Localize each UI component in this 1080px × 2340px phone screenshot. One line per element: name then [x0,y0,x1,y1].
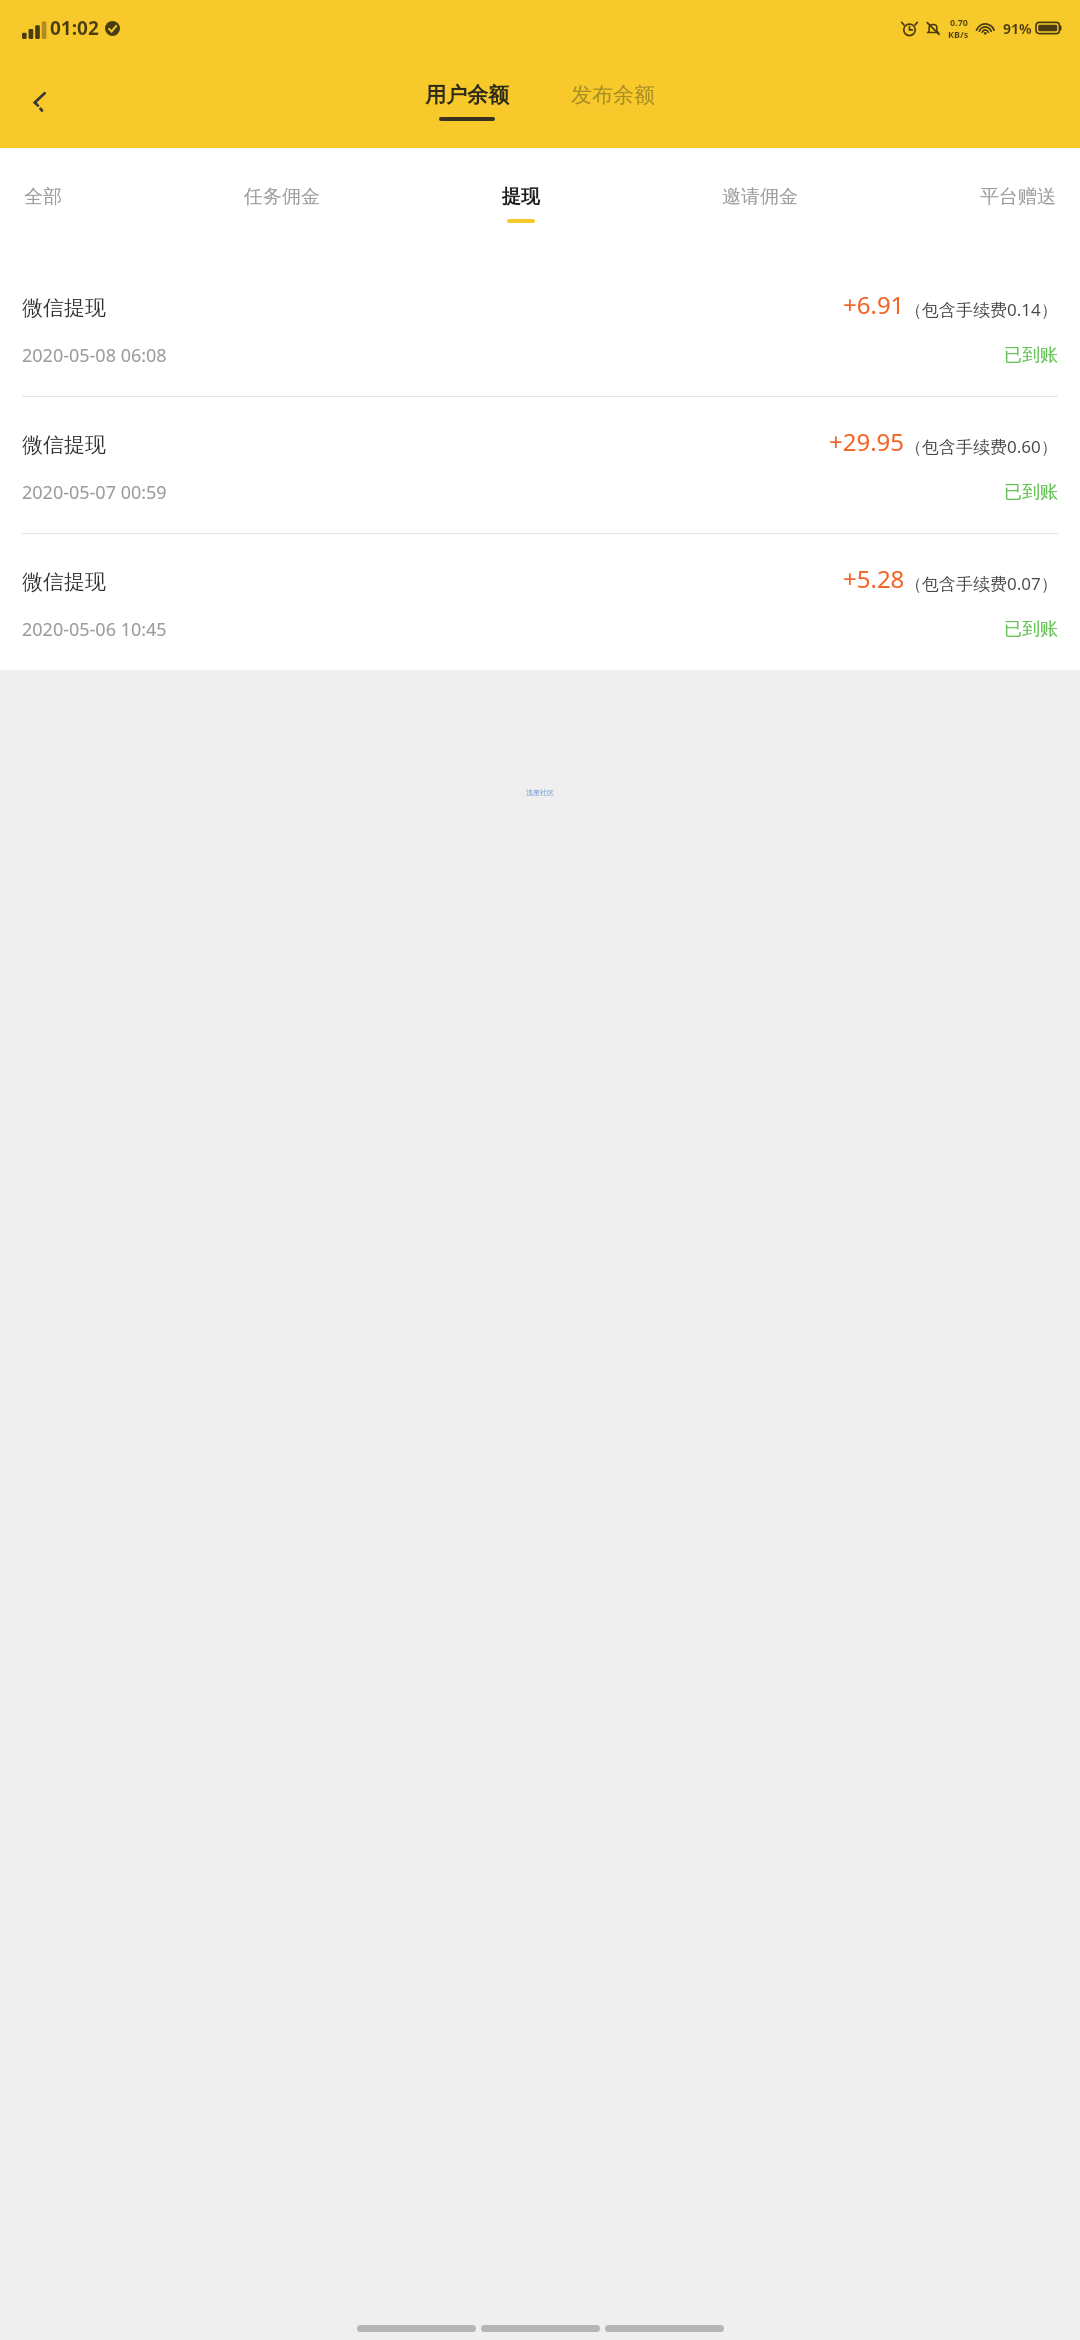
staticText: （包含手续费0.60） [905,435,1058,458]
button[interactable]: 微信提现 [0,397,1080,533]
staticText: 邀请佣金 [722,185,798,209]
staticText: 微信提现 [22,432,106,458]
staticText: +5.28 [843,562,905,595]
staticText: 发布余额 [571,82,655,108]
staticText: +6.91 [843,288,905,321]
staticText: 0.70 [950,16,968,28]
staticText: 平台赠送 [980,185,1056,209]
staticText: KB/s [948,28,969,40]
button[interactable]: 提现 [492,179,550,229]
staticText: 流星社区 [526,788,554,797]
staticText: 微信提现 [22,295,106,321]
staticText: 用户余额 [425,82,509,108]
button[interactable]: 全部 [14,179,72,229]
staticText: 提现 [502,185,540,209]
staticText: 微信提现 [22,569,106,595]
button[interactable]: 微信提现 [0,260,1080,396]
staticText: 全部 [24,185,62,209]
button[interactable]: Recents [605,2325,724,2332]
button[interactable]: Back [12,74,68,130]
button[interactable]: 平台赠送 [970,179,1066,229]
staticText: 2020-05-06 10:45 [22,617,167,642]
button[interactable]: 微信提现 [0,534,1080,670]
staticText: 91% [1003,19,1032,38]
staticText: 已到账 [1004,618,1058,641]
staticText: 已到账 [1004,344,1058,367]
button[interactable]: 任务佣金 [234,179,330,229]
staticText: 01:02 [50,15,99,41]
staticText: （包含手续费0.07） [905,572,1058,595]
button[interactable]: Home [481,2325,600,2332]
button[interactable]: Back [357,2325,476,2332]
button[interactable]: 邀请佣金 [712,179,808,229]
staticText: 2020-05-08 06:08 [22,343,167,368]
staticText: +29.95 [829,425,905,458]
staticText: 已到账 [1004,481,1058,504]
button[interactable]: 用户余额 [413,78,521,125]
button[interactable]: 发布余额 [559,78,667,125]
staticText: （包含手续费0.14） [905,298,1058,321]
staticText: 2020-05-07 00:59 [22,480,167,505]
staticText: 任务佣金 [244,185,320,209]
